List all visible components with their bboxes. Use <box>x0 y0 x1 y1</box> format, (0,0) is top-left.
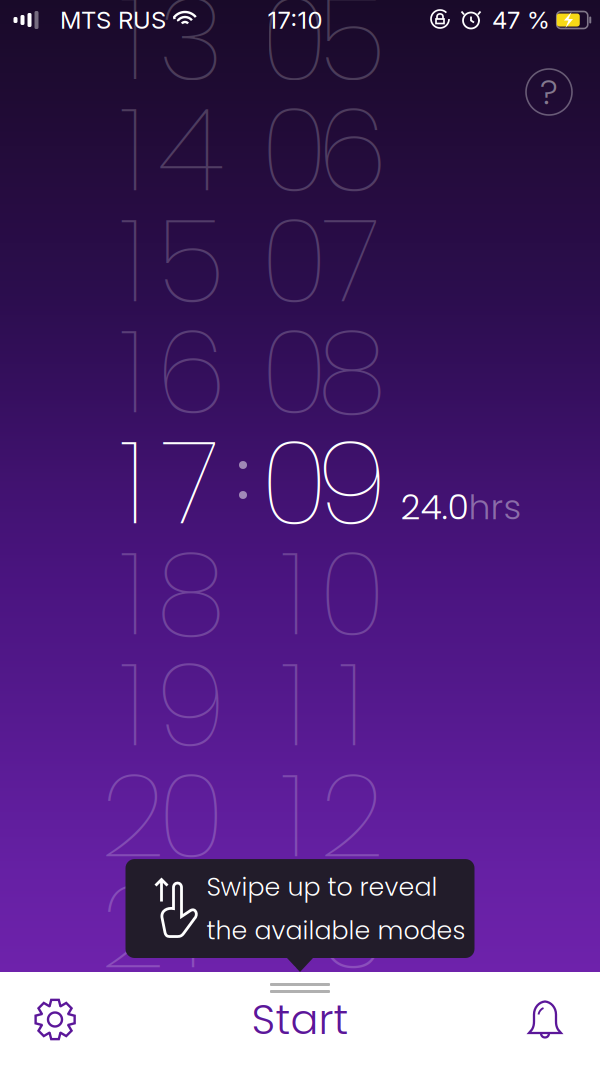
staticText: 5 <box>157 181 225 341</box>
staticText: 0 <box>318 514 385 674</box>
staticText: 0 <box>260 181 327 341</box>
staticText: 47 % <box>492 5 550 34</box>
staticText: MTS RUS <box>60 5 166 34</box>
staticText: 9 <box>317 403 387 563</box>
staticText: 1 <box>120 514 146 674</box>
staticText: 4 <box>158 70 224 230</box>
button[interactable]: Help <box>526 69 572 115</box>
staticText: Start <box>251 991 348 1048</box>
staticText: 0 <box>157 736 224 896</box>
staticText: 1 <box>339 625 365 785</box>
staticText: 1 <box>120 70 146 230</box>
staticText: 1 <box>281 625 307 785</box>
staticText: 2 <box>100 847 165 1007</box>
staticText: 3 <box>319 847 385 1007</box>
staticText: the available modes <box>206 912 465 948</box>
staticText: 0 <box>260 292 327 452</box>
button[interactable]: Alarms <box>490 972 600 1067</box>
staticText: 9 <box>156 625 226 785</box>
staticText: 0 <box>260 403 327 563</box>
staticText: 8 <box>156 514 226 674</box>
staticText: 8 <box>317 292 387 452</box>
staticText: 1 <box>281 736 307 896</box>
staticText: Swipe up to reveal <box>206 869 437 905</box>
staticText: 1 <box>281 847 307 1007</box>
staticText: 0 <box>260 0 327 119</box>
staticText: 7 <box>162 403 220 563</box>
staticText: 1 <box>120 181 146 341</box>
button[interactable]: Settings <box>0 972 110 1067</box>
staticText: 24.0 <box>400 483 468 531</box>
staticText: 6 <box>317 70 387 230</box>
staticText: 1 <box>178 847 204 1007</box>
staticText: 17:10 <box>267 5 322 34</box>
staticText: 2 <box>100 736 165 896</box>
staticText: 3 <box>158 0 224 119</box>
staticText: 7 <box>323 181 381 341</box>
staticText: 6 <box>156 292 226 452</box>
staticText: 1 <box>120 292 146 452</box>
staticText: hrs <box>468 483 521 531</box>
staticText: 5 <box>318 0 386 119</box>
staticText: ? <box>540 68 558 116</box>
staticText: 1 <box>120 0 146 119</box>
staticText: 2 <box>319 736 384 896</box>
staticText: 1 <box>281 514 307 674</box>
staticText: 1 <box>120 403 146 563</box>
button[interactable]: Start <box>200 972 400 1067</box>
staticText: 0 <box>260 70 327 230</box>
staticText: 1 <box>120 625 146 785</box>
